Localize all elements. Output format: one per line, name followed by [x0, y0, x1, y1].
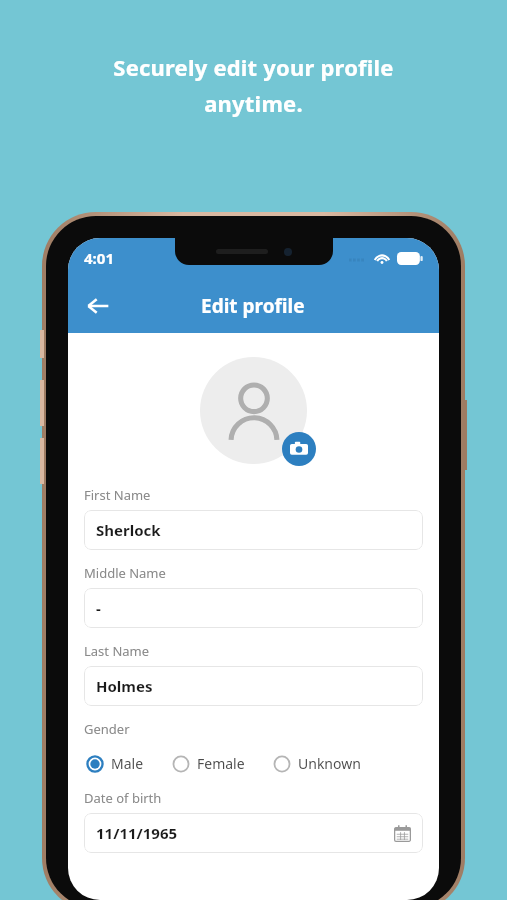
staticText: -: [96, 598, 101, 618]
button[interactable]: Male: [84, 752, 146, 775]
button[interactable]: 11/11/1965: [84, 813, 423, 853]
button[interactable]: Female: [170, 752, 247, 775]
staticText: Middle Name: [84, 564, 166, 582]
staticText: Securely edit your profile: [113, 52, 394, 82]
staticText: Gender: [84, 720, 130, 738]
staticText: First Name: [84, 486, 151, 504]
button[interactable]: Holmes: [84, 666, 423, 706]
staticText: Edit profile: [201, 293, 305, 319]
button[interactable]: Profile photo: [200, 357, 307, 464]
button[interactable]: -: [84, 588, 423, 628]
button[interactable]: Back: [76, 284, 120, 328]
button[interactable]: Unknown: [271, 752, 363, 775]
staticText: Female: [197, 754, 245, 773]
staticText: Unknown: [298, 754, 361, 773]
button[interactable]: Sherlock: [84, 510, 423, 550]
staticText: 11/11/1965: [96, 823, 178, 843]
staticText: anytime.: [204, 88, 303, 118]
staticText: 4:01: [84, 248, 114, 268]
button[interactable]: Change photo: [282, 432, 316, 466]
staticText: Male: [111, 754, 144, 773]
staticText: Last Name: [84, 642, 150, 660]
staticText: Holmes: [96, 676, 153, 696]
staticText: Sherlock: [96, 520, 161, 540]
staticText: Date of birth: [84, 789, 162, 807]
